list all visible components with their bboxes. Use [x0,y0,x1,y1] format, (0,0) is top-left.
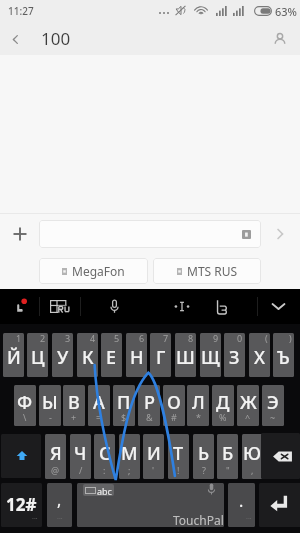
staticText: Ь [198,441,210,466]
button[interactable]: 1 [3,333,24,377]
button[interactable]: Enter [259,483,300,527]
staticText: Ю [243,441,262,466]
staticText: Ъ [277,345,290,370]
button[interactable]: / [70,434,91,479]
button[interactable]: ; [119,434,140,479]
staticText: И [147,441,161,466]
staticText: TouchPal [173,512,223,527]
staticText: А [93,390,105,415]
staticText: Х [254,345,265,370]
button[interactable]: % [212,385,234,426]
button[interactable]: ! [168,434,189,479]
staticText: 6 [139,333,145,344]
button[interactable]: 9 [200,333,221,377]
staticText: , [57,489,62,511]
staticText: . [239,490,244,512]
staticText: \ [23,411,27,423]
button[interactable]: Back [0,24,30,54]
button[interactable]: , [47,483,72,527]
button[interactable]: Gesture input [4,294,35,319]
button[interactable]: MTS RUS [153,258,261,284]
staticText: 5 [114,333,120,344]
staticText: , [251,464,254,476]
button[interactable]: " [217,434,238,479]
button[interactable]: 7 [150,333,171,377]
staticText: Б [222,441,234,466]
button[interactable]: + [63,385,85,426]
button[interactable]: @ [45,434,66,479]
button[interactable]: Send [265,219,295,249]
staticText: ( [265,333,268,344]
button[interactable]: MegaFon [39,258,148,284]
staticText: 11:27 [8,4,34,18]
button[interactable]: Clipboard [206,294,237,319]
button[interactable]: ( [249,333,270,377]
button[interactable]: ^ [237,385,259,426]
staticText: ··· [246,514,252,524]
button[interactable]: * [187,385,209,426]
button[interactable]: ~ [262,385,284,426]
button[interactable]: 0 [224,333,245,377]
button[interactable]: 4 [77,333,98,377]
staticText: = [96,411,102,423]
staticText: С [99,441,111,466]
button[interactable]: ? [193,434,214,479]
staticText: ? [202,464,206,476]
button[interactable]: \ [14,385,36,426]
staticText: + [71,411,77,423]
button[interactable]: Add attachment [0,214,39,254]
staticText: abc [97,485,112,497]
button[interactable]: Contact details [267,26,293,52]
staticText: Д [216,390,230,415]
staticText: % [219,411,227,423]
staticText: ~ [270,411,276,423]
staticText: Л [192,390,205,415]
button[interactable] [39,220,261,248]
button[interactable]: 6 [126,333,147,377]
button[interactable]: Voice input [99,294,130,319]
button[interactable]: Space [77,483,224,527]
staticText: Ч [74,441,87,466]
button[interactable]: ' [143,434,164,479]
button[interactable]: , [242,434,263,479]
button[interactable]: $ [113,385,135,426]
button[interactable]: : [94,434,115,479]
button[interactable]: Backspace [261,433,300,479]
staticText: MegaFon [72,263,125,279]
button[interactable]: 2 [27,333,48,377]
button[interactable]: Hide keyboard [263,294,294,319]
staticText: 0 [237,333,243,344]
staticText: 100 [41,27,71,50]
button[interactable]: - [39,385,61,426]
button[interactable]: # [163,385,185,426]
staticText: Э [267,390,279,415]
staticText: Ш [176,345,195,370]
staticText: Ф [17,390,33,415]
button[interactable]: = [88,385,110,426]
button[interactable]: . [228,483,255,527]
button[interactable]: Switch language [44,294,76,319]
button[interactable]: Symbols [1,483,42,527]
button[interactable]: 5 [101,333,122,377]
staticText: Г [156,345,166,370]
staticText: З [229,345,240,370]
staticText: 9 [213,333,219,344]
staticText: / [79,464,83,476]
staticText: Ж [240,390,257,415]
staticText: : [103,464,106,476]
button[interactable]: Cursor control [166,294,197,319]
staticText: Я [50,441,62,466]
staticText: Й [7,345,21,370]
staticText: ' [152,464,155,476]
button[interactable]: 3 [52,333,73,377]
button[interactable]: 8 [175,333,196,377]
staticText: @ [51,464,60,476]
staticText: ! [177,464,180,476]
staticText: 1 [16,333,22,344]
button[interactable]: & [138,385,160,426]
staticText: 2 [40,333,46,344]
staticText: Щ [201,345,220,370]
button[interactable]: ) [273,333,294,377]
staticText: Н [130,345,144,370]
button[interactable]: Shift [1,434,41,478]
